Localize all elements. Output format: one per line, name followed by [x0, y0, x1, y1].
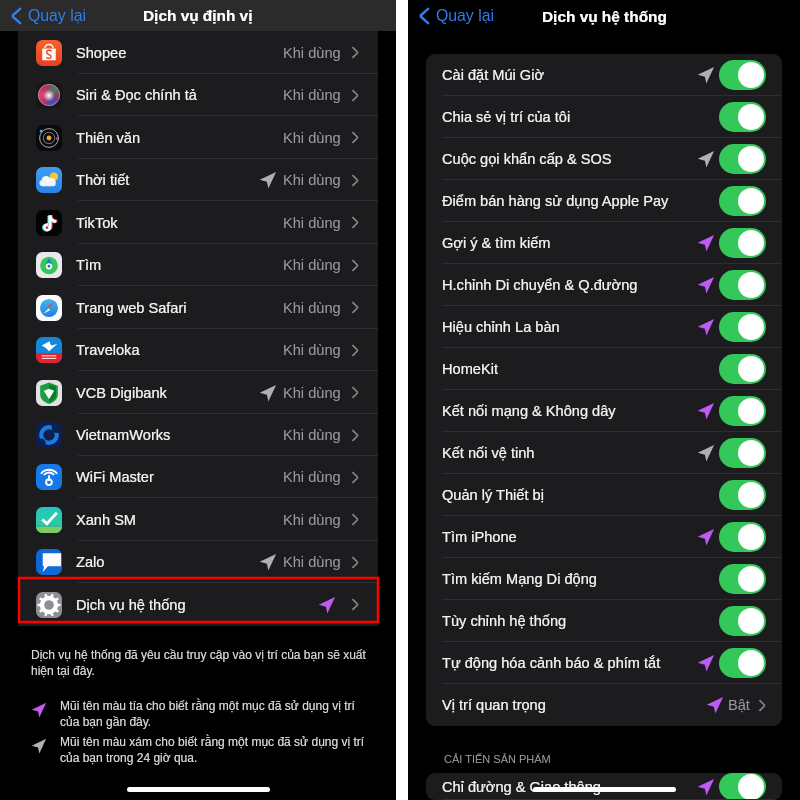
button[interactable]: Toggle on	[719, 312, 766, 342]
staticText: Tìm kiếm Mạng Di động	[442, 571, 719, 587]
staticText: Hiệu chỉnh La bàn	[442, 319, 697, 335]
staticText: Khi dùng	[283, 87, 341, 103]
staticText: Dịch vụ hệ thống	[542, 8, 667, 25]
button[interactable]: Toggle on	[719, 773, 766, 800]
button[interactable]: Toggle on	[719, 270, 766, 300]
button[interactable]: Chia sẻ vị trí của tôi	[426, 96, 782, 138]
staticText: Khi dùng	[283, 512, 341, 528]
button[interactable]: Trang web Safari	[18, 286, 378, 329]
staticText: Mũi tên màu xám cho biết rằng một mục đã…	[60, 735, 368, 765]
button[interactable]: Tìm	[18, 244, 378, 286]
staticText: Khi dùng	[283, 130, 341, 146]
staticText: Dịch vụ hệ thống đã yêu cầu truy cập vào…	[31, 648, 368, 678]
button[interactable]: Cài đặt Múi Giờ	[426, 54, 782, 96]
button[interactable]: Xanh SM	[18, 498, 378, 541]
button[interactable]: Tìm iPhone	[426, 516, 782, 558]
staticText: Gợi ý & tìm kiếm	[442, 235, 697, 251]
staticText: Tự động hóa cảnh báo & phím tắt	[442, 655, 697, 671]
button[interactable]: Tìm kiếm Mạng Di động	[426, 558, 782, 600]
staticText: Mũi tên màu tía cho biết rằng một mục đã…	[60, 699, 368, 729]
staticText: Tìm iPhone	[442, 529, 697, 545]
button[interactable]: Tùy chỉnh hệ thống	[426, 600, 782, 642]
button[interactable]: VCB Digibank	[18, 371, 378, 414]
button[interactable]: Toggle on	[719, 648, 766, 678]
button[interactable]: HomeKit	[426, 348, 782, 390]
button[interactable]: Thời tiết	[18, 159, 378, 201]
button[interactable]: Quản lý Thiết bị	[426, 474, 782, 516]
button[interactable]: Kết nối mạng & Không dây	[426, 390, 782, 432]
staticText: Khi dùng	[283, 45, 341, 61]
staticText: Vị trí quan trọng	[442, 697, 706, 713]
button[interactable]: Hiệu chỉnh La bàn	[426, 306, 782, 348]
staticText: Kết nối vệ tinh	[442, 445, 697, 461]
button[interactable]: Toggle on	[719, 606, 766, 636]
staticText: Traveloka	[76, 342, 283, 358]
staticText: Khi dùng	[283, 342, 341, 358]
staticText: Khi dùng	[283, 385, 341, 401]
staticText: Cài đặt Múi Giờ	[442, 67, 697, 83]
staticText: Khi dùng	[283, 300, 341, 316]
button[interactable]: Traveloka	[18, 329, 378, 371]
staticText: TikTok	[76, 215, 283, 231]
staticText: Zalo	[76, 554, 259, 570]
button[interactable]: Toggle on	[719, 144, 766, 174]
staticText: Quản lý Thiết bị	[442, 487, 719, 503]
staticText: Xanh SM	[76, 512, 283, 528]
staticText: Khi dùng	[283, 172, 341, 188]
staticText: Thời tiết	[76, 172, 259, 188]
button[interactable]: Toggle on	[719, 186, 766, 216]
button[interactable]: Toggle on	[719, 396, 766, 426]
button[interactable]: Quay lại	[11, 0, 86, 31]
staticText: Bật	[728, 697, 750, 713]
staticText: Cuộc gọi khẩn cấp & SOS	[442, 151, 697, 167]
button[interactable]: Toggle on	[719, 102, 766, 132]
staticText: Khi dùng	[283, 427, 341, 443]
staticText: Khi dùng	[283, 554, 341, 570]
button[interactable]: Toggle on	[719, 228, 766, 258]
button[interactable]: VietnamWorks	[18, 414, 378, 456]
button[interactable]: Toggle on	[719, 564, 766, 594]
button[interactable]: Gợi ý & tìm kiếm	[426, 222, 782, 264]
button[interactable]: Dịch vụ hệ thống	[18, 583, 378, 626]
staticText: Tìm	[76, 257, 283, 273]
button[interactable]: Toggle on	[719, 438, 766, 468]
button[interactable]: Cuộc gọi khẩn cấp & SOS	[426, 138, 782, 180]
staticText: Shopee	[76, 45, 283, 61]
staticText: Quay lại	[436, 7, 494, 25]
button[interactable]: Thiên văn	[18, 116, 378, 159]
button[interactable]: Zalo	[18, 541, 378, 583]
button[interactable]: Điểm bán hàng sử dụng Apple Pay	[426, 180, 782, 222]
button[interactable]: Toggle on	[719, 480, 766, 510]
button[interactable]: Vị trí quan trọng	[426, 684, 782, 726]
staticText: Thiên văn	[76, 130, 283, 146]
staticText: Trang web Safari	[76, 300, 283, 316]
button[interactable]: WiFi Master	[18, 456, 378, 498]
staticText: Khi dùng	[283, 469, 341, 485]
button[interactable]: Shopee	[18, 31, 378, 74]
staticText: Quay lại	[28, 7, 86, 25]
staticText: HomeKit	[442, 361, 719, 377]
button[interactable]: Kết nối vệ tinh	[426, 432, 782, 474]
staticText: VCB Digibank	[76, 385, 259, 401]
staticText: Khi dùng	[283, 257, 341, 273]
button[interactable]: H.chỉnh Di chuyển & Q.đường	[426, 264, 782, 306]
staticText: CẢI TIẾN SẢN PHẨM	[444, 753, 551, 765]
button[interactable]: Toggle on	[719, 60, 766, 90]
staticText: VietnamWorks	[76, 427, 283, 443]
staticText: WiFi Master	[76, 469, 283, 485]
staticText: H.chỉnh Di chuyển & Q.đường	[442, 277, 697, 293]
staticText: Dịch vụ định vị	[143, 7, 253, 24]
staticText: Tùy chỉnh hệ thống	[442, 613, 719, 629]
button[interactable]: TikTok	[18, 201, 378, 244]
button[interactable]: Chỉ đường & Giao thông	[426, 773, 782, 800]
button[interactable]: Siri & Đọc chính tả	[18, 74, 378, 116]
staticText: Điểm bán hàng sử dụng Apple Pay	[442, 193, 719, 209]
staticText: Kết nối mạng & Không dây	[442, 403, 697, 419]
staticText: Chia sẻ vị trí của tôi	[442, 109, 719, 125]
button[interactable]: Quay lại	[419, 0, 494, 32]
staticText: Chỉ đường & Giao thông	[442, 779, 697, 795]
button[interactable]: Toggle on	[719, 354, 766, 384]
button[interactable]: Toggle on	[719, 522, 766, 552]
staticText: Dịch vụ hệ thống	[76, 597, 318, 613]
button[interactable]: Tự động hóa cảnh báo & phím tắt	[426, 642, 782, 684]
